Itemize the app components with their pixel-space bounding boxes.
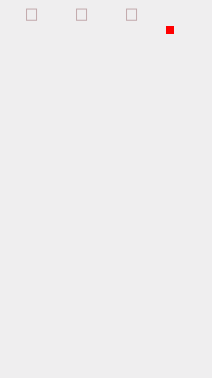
button[interactable]: X	[120, 2, 143, 27]
button[interactable]	[70, 2, 93, 27]
